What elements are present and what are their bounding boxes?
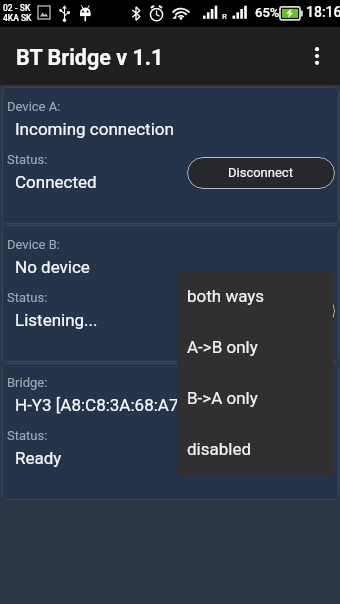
- staticText: Disconnect: [228, 303, 293, 318]
- button[interactable]: Device B:: [2, 225, 339, 362]
- staticText: Ready: [15, 448, 62, 468]
- staticText: BT Bridge v 1.1: [16, 45, 164, 70]
- staticText: 18:16: [306, 4, 340, 20]
- staticText: both ways: [187, 286, 265, 306]
- staticText: No device: [15, 257, 335, 277]
- staticText: 4KA SK: [3, 13, 32, 23]
- staticText: 65%: [255, 5, 280, 20]
- button[interactable]: More options: [297, 36, 337, 76]
- staticText: H-Y3 [A8:C8:3A:68:A7:11]: [15, 395, 335, 415]
- staticText: Bridge:: [7, 375, 48, 390]
- button[interactable]: Device A:: [2, 87, 339, 224]
- button[interactable]: B->A only: [177, 373, 333, 424]
- staticText: Status:: [7, 152, 48, 167]
- button[interactable]: A->B only: [177, 322, 333, 373]
- staticText: 02 - SK: [3, 3, 31, 13]
- staticText: Status:: [7, 428, 48, 443]
- staticText: Disconnect: [228, 165, 293, 180]
- button[interactable]: Bridge:: [2, 363, 339, 500]
- staticText: A->B only: [187, 337, 258, 357]
- button[interactable]: disabled: [177, 424, 333, 475]
- button[interactable]: Disconnect: [187, 295, 335, 327]
- button[interactable]: both ways: [177, 271, 333, 322]
- button[interactable]: Disconnect: [187, 157, 335, 189]
- staticText: B->A only: [187, 388, 258, 408]
- staticText: Connected: [15, 172, 97, 192]
- staticText: Status:: [7, 290, 48, 305]
- staticText: R: [222, 12, 227, 21]
- staticText: Incoming connection: [15, 119, 335, 139]
- staticText: Listening...: [15, 310, 98, 330]
- staticText: Device B:: [7, 237, 60, 252]
- staticText: Device A:: [7, 99, 61, 114]
- staticText: disabled: [187, 439, 252, 459]
